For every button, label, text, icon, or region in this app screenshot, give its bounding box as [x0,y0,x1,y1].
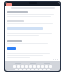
button[interactable] [41,65,44,68]
button[interactable] [17,65,20,68]
button[interactable] [49,65,52,68]
button[interactable] [25,65,28,68]
button[interactable] [21,65,24,68]
button[interactable]: Primary action [7,47,16,50]
button[interactable] [37,65,40,68]
button[interactable]: Active tab [6,3,12,6]
button[interactable] [13,65,16,68]
button[interactable] [29,65,32,68]
button[interactable] [33,65,36,68]
button[interactable] [45,65,48,68]
